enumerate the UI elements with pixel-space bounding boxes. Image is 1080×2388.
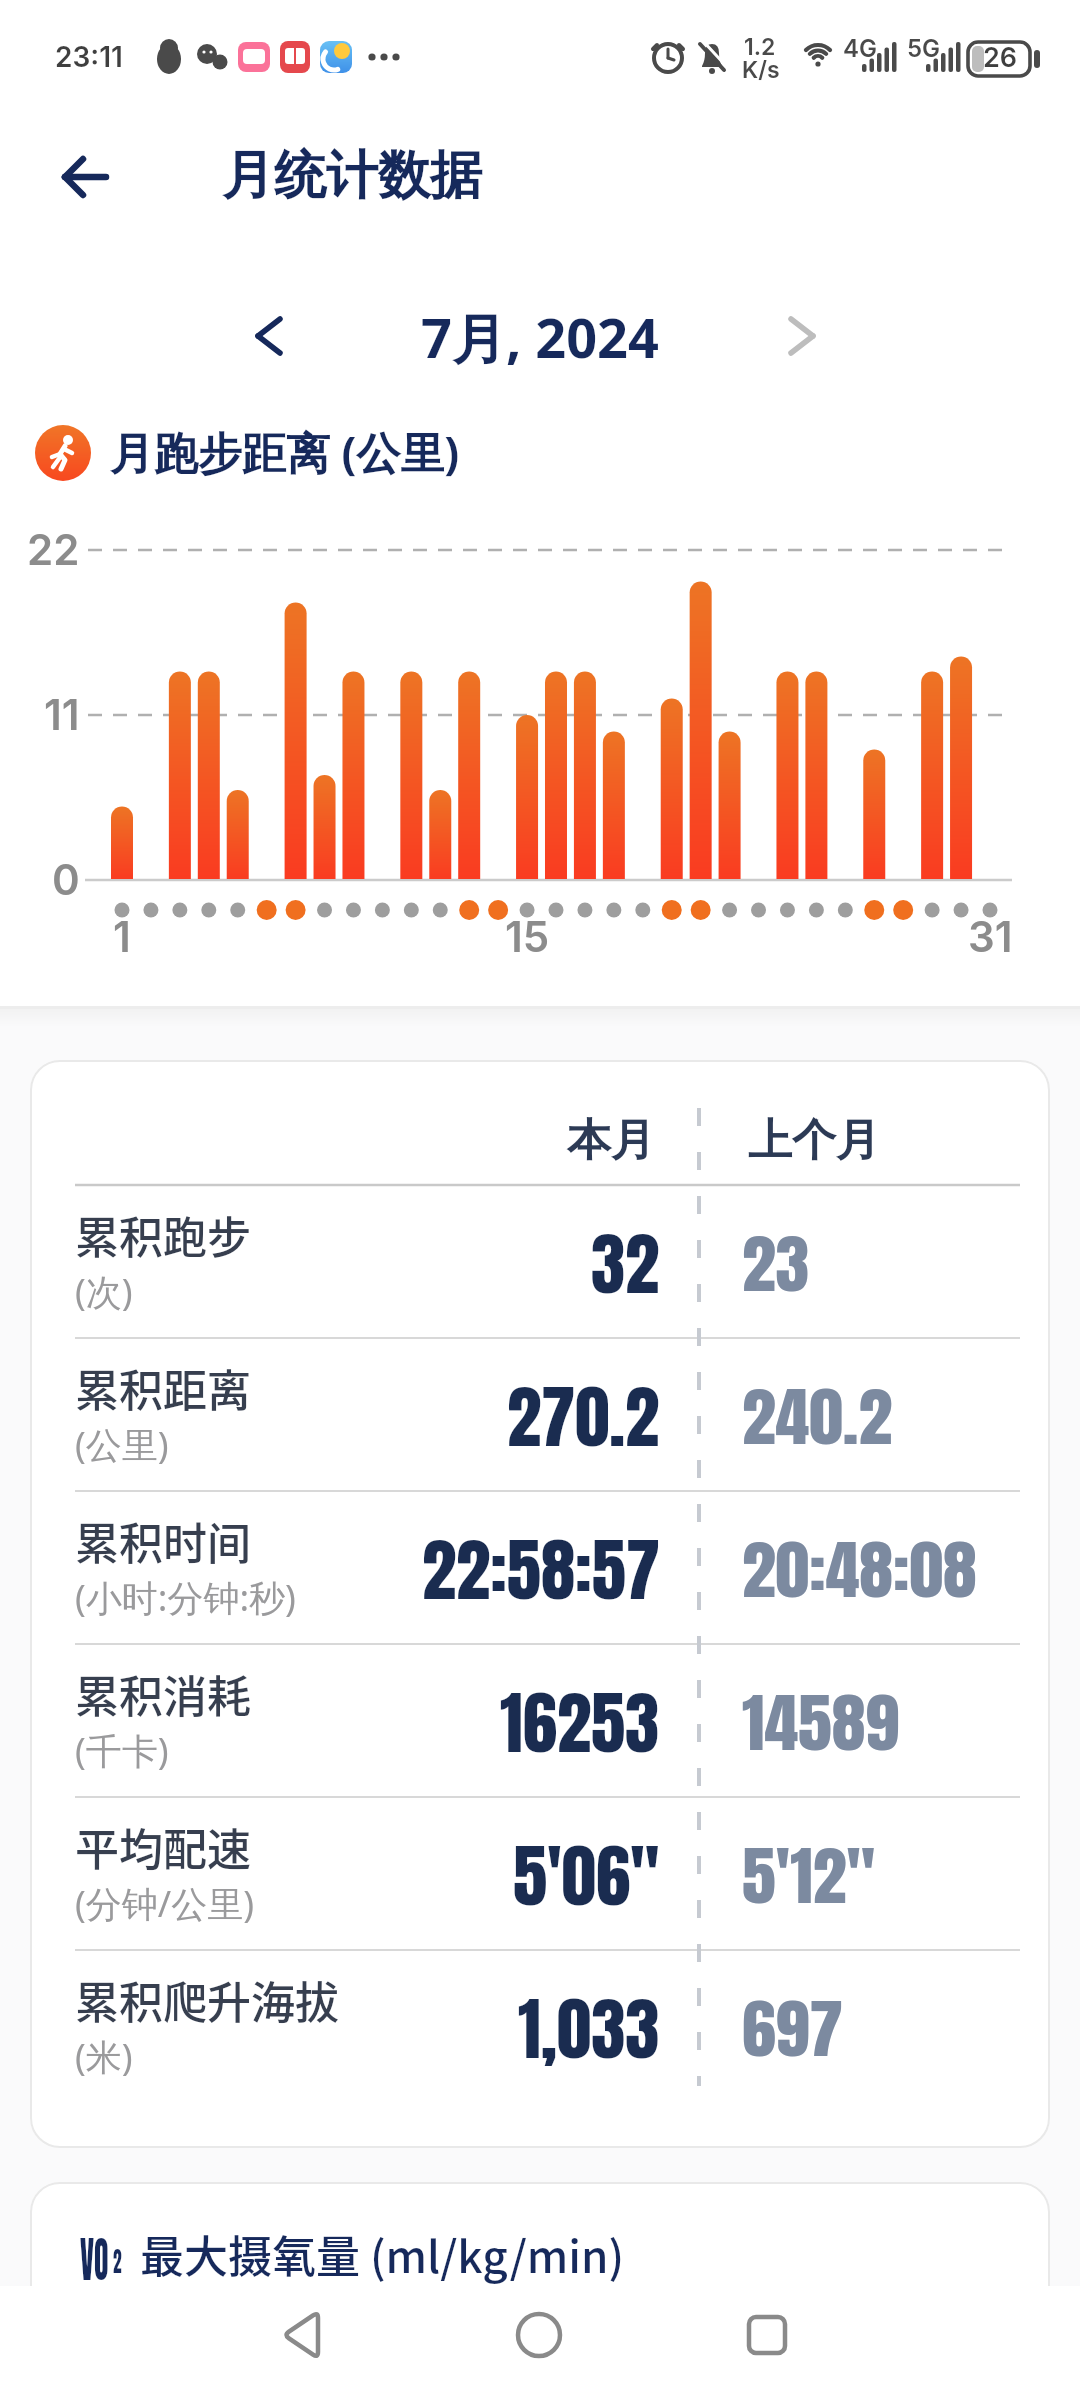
staticText: 0 [52,854,80,905]
staticText: 累积消耗 [75,1662,251,1726]
staticText: (分钟/公里) [75,1879,254,1928]
staticText: 20:48:08 [742,1523,977,1618]
staticText: VO [80,2224,108,2284]
staticText: 2 [113,2240,122,2280]
staticText: 月跑步距离 (公里) [110,422,460,482]
staticText: 4G [843,34,877,63]
staticText: 32 [591,1212,660,1316]
staticText: 累积时间 [75,1509,251,1573]
button[interactable] [717,2290,817,2380]
staticText: 240.2 [742,1370,892,1465]
staticText: 22 [27,524,80,575]
button[interactable] [40,132,130,222]
staticText: 23 [742,1217,810,1312]
staticText: 270.2 [507,1365,660,1469]
button[interactable] [233,300,305,372]
button[interactable] [489,2290,589,2380]
staticText: 22:58:57 [422,1518,660,1622]
staticText: 26 [983,41,1018,74]
staticText: 1 [113,911,131,962]
staticText: 5'06'' [513,1824,660,1928]
staticText: 上个月 [748,1113,880,1168]
staticText: (公里) [75,1420,169,1469]
staticText: 最大摄氧量 (ml/kg/min) [140,2222,625,2286]
staticText: 15 [505,911,550,962]
staticText: (千卡) [75,1726,169,1775]
staticText: 累积爬升海拔 [75,1968,339,2032]
staticText: K/s [742,56,780,84]
staticText: 1.2 [744,33,776,61]
button[interactable] [250,2290,350,2380]
staticText: 23:11 [55,40,123,74]
button[interactable] [766,300,838,372]
staticText: 5G [907,34,941,63]
staticText: 月统计数据 [222,143,482,209]
staticText: 累积跑步 [75,1203,251,1267]
staticText: (小时:分钟:秒) [75,1573,296,1622]
staticText: 14589 [742,1676,900,1771]
staticText: 11 [44,689,80,740]
staticText: (米) [75,2032,133,2081]
staticText: 累积距离 [75,1356,251,1420]
staticText: 1,033 [518,1977,660,2081]
staticText: (次) [75,1267,133,1316]
staticText: 平均配速 [75,1815,251,1879]
staticText: 697 [742,1982,843,2077]
staticText: 16253 [500,1671,660,1775]
staticText: 31 [968,911,1013,962]
staticText: 7月, 2024 [421,300,659,374]
staticText: 本月 [567,1113,655,1168]
staticText: 5'12'' [742,1829,876,1924]
